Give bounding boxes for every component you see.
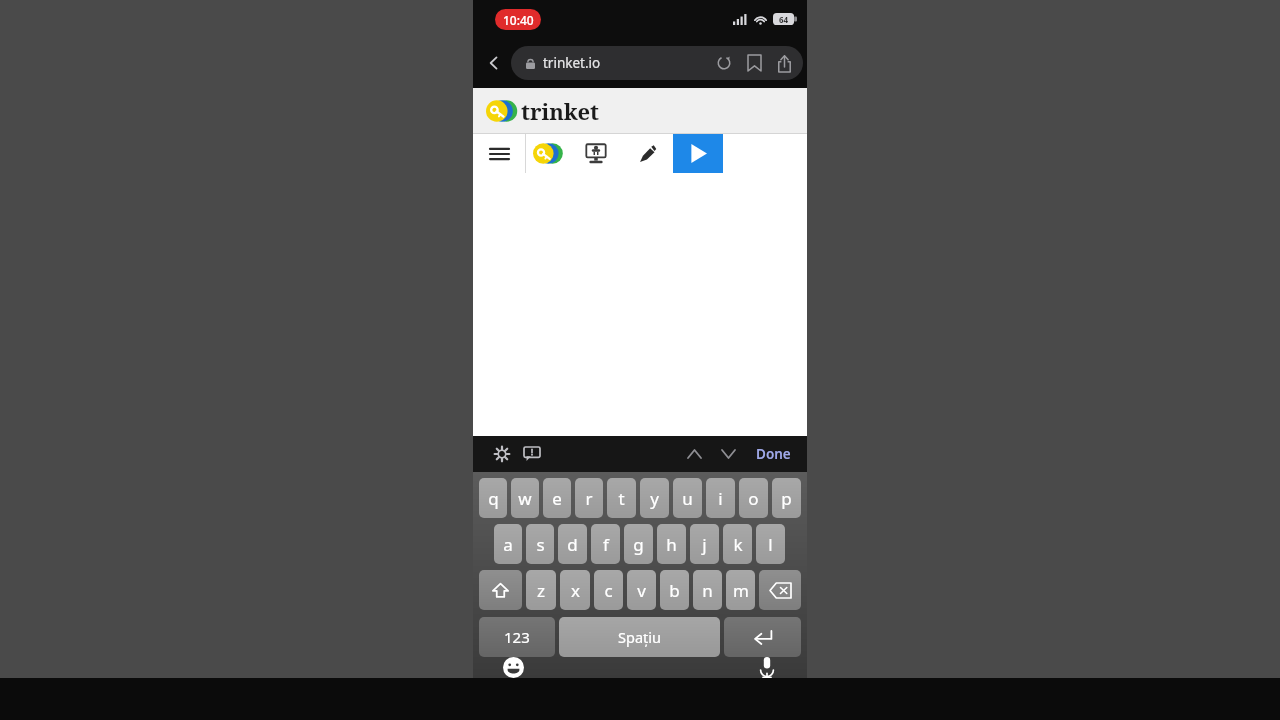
staticText: 10:40 [503, 12, 534, 28]
button[interactable]: Back [479, 48, 509, 78]
button[interactable]: d [558, 524, 587, 564]
staticText: i [718, 487, 723, 510]
staticText: d [567, 533, 578, 556]
staticText: Done [756, 445, 791, 463]
button[interactable]: r [575, 478, 603, 518]
button[interactable]: n [693, 570, 722, 610]
button[interactable]: Shift [479, 570, 522, 610]
button[interactable]: k [723, 524, 752, 564]
button[interactable]: Menu [473, 134, 525, 173]
staticText: s [536, 533, 545, 556]
staticText: a [503, 533, 513, 556]
button[interactable]: g [624, 524, 653, 564]
staticText: trinket.io [543, 54, 601, 72]
staticText: p [781, 487, 792, 510]
staticText: v [637, 579, 646, 602]
button[interactable]: o [739, 478, 768, 518]
button[interactable]: m [726, 570, 755, 610]
staticText: k [733, 533, 743, 556]
staticText: g [633, 533, 644, 556]
button[interactable]: Bookmark [739, 48, 769, 78]
button[interactable]: e [543, 478, 571, 518]
staticText: Spațiu [618, 627, 661, 647]
staticText: f [603, 533, 609, 556]
button[interactable]: trinket.io [511, 46, 803, 80]
button[interactable]: Reload [709, 48, 739, 78]
button[interactable]: Settings [489, 441, 515, 467]
staticText: z [537, 579, 545, 602]
staticText: n [702, 579, 713, 602]
button[interactable]: b [660, 570, 689, 610]
staticText: t [618, 487, 625, 510]
staticText: x [571, 579, 580, 602]
staticText: j [702, 533, 707, 556]
staticText: w [518, 487, 532, 510]
button[interactable]: f [591, 524, 620, 564]
button[interactable]: u [673, 478, 702, 518]
button[interactable]: a [494, 524, 522, 564]
button[interactable]: Spațiu [559, 617, 720, 657]
staticText: o [748, 487, 759, 510]
staticText: b [669, 579, 680, 602]
staticText: 64 [779, 14, 789, 25]
staticText: l [768, 533, 773, 556]
button[interactable]: q [479, 478, 507, 518]
staticText: u [682, 487, 693, 510]
button[interactable]: v [627, 570, 656, 610]
button[interactable]: Feedback [519, 441, 545, 467]
button[interactable]: Voice input [753, 657, 781, 678]
button[interactable]: Previous field [680, 440, 708, 468]
button[interactable]: Edit [622, 134, 673, 173]
staticText: h [666, 533, 677, 556]
button[interactable]: x [560, 570, 590, 610]
button[interactable]: z [526, 570, 556, 610]
button[interactable]: Backspace [759, 570, 801, 610]
button[interactable]: Run [673, 134, 723, 173]
button[interactable]: t [607, 478, 636, 518]
staticText: q [488, 487, 499, 510]
button[interactable]: c [594, 570, 623, 610]
button[interactable]: Done [754, 441, 793, 467]
staticText: 123 [504, 627, 530, 647]
staticText: e [552, 487, 562, 510]
button[interactable]: p [772, 478, 801, 518]
button[interactable]: Return [724, 617, 801, 657]
button[interactable]: h [657, 524, 686, 564]
button[interactable]: w [511, 478, 539, 518]
button[interactable]: s [526, 524, 554, 564]
staticText: m [733, 579, 749, 602]
button[interactable]: Share [769, 48, 799, 78]
staticText: c [604, 579, 613, 602]
staticText: r [585, 487, 593, 510]
button[interactable]: i [706, 478, 735, 518]
staticText: trinket [521, 96, 599, 126]
button[interactable]: 123 [479, 617, 555, 657]
button[interactable]: l [756, 524, 785, 564]
staticText: y [650, 487, 659, 510]
button[interactable]: Console [570, 134, 622, 173]
button[interactable]: y [640, 478, 669, 518]
button[interactable]: Next field [714, 440, 742, 468]
button[interactable]: Emoji [499, 657, 527, 678]
button[interactable]: j [690, 524, 719, 564]
button[interactable]: Trinket [526, 134, 570, 173]
